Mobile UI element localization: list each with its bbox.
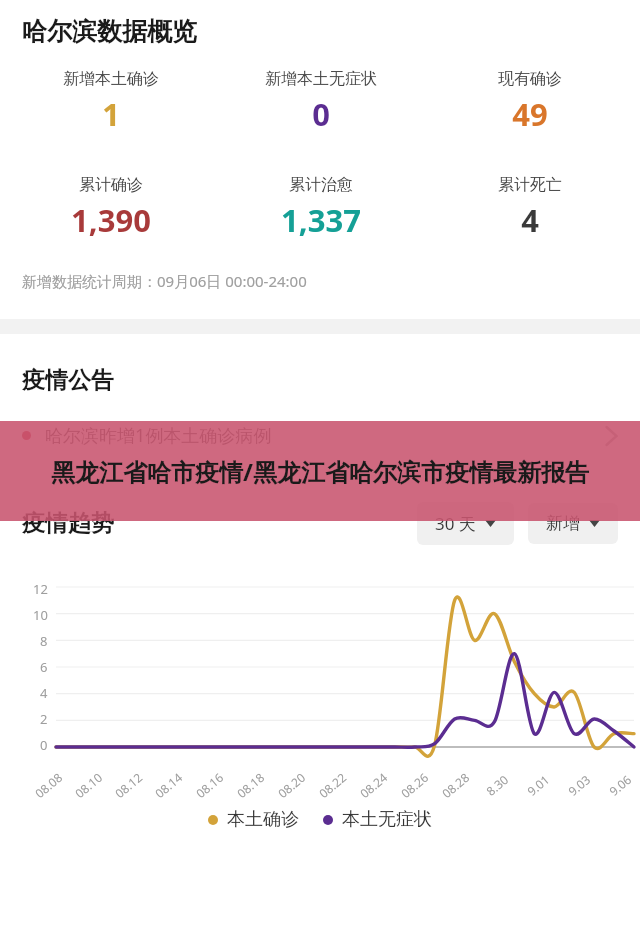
staticText: 疫情公告: [22, 366, 114, 395]
staticText: 08.18: [233, 769, 267, 801]
button[interactable]: 30 天: [417, 502, 514, 545]
staticText: 10: [33, 606, 48, 624]
staticText: 现有确诊: [498, 69, 562, 89]
other: 查看详情: [605, 425, 618, 447]
staticText: 累计死亡: [498, 175, 562, 195]
staticText: 本土无症状: [342, 808, 432, 831]
staticText: 08.10: [71, 769, 105, 801]
staticText: 新增: [546, 513, 580, 534]
staticText: 1: [102, 93, 120, 135]
staticText: 08.28: [438, 769, 472, 801]
staticText: 2: [40, 710, 48, 728]
staticText: 30 天: [435, 512, 476, 535]
button[interactable]: 新增: [528, 503, 618, 544]
staticText: 新增本土无症状: [265, 69, 377, 89]
staticText: 0: [312, 93, 330, 135]
staticText: 1,390: [71, 199, 151, 241]
staticText: 哈尔滨数据概览: [22, 16, 197, 47]
staticText: 哈尔滨昨增1例本土确诊病例: [45, 423, 605, 448]
staticText: 9.03: [565, 771, 593, 799]
staticText: 08.22: [315, 769, 349, 801]
staticText: 累计确诊: [79, 175, 143, 195]
button[interactable]: 哈尔滨昨增1例本土确诊病例: [0, 419, 640, 452]
staticText: 黑龙江省哈市疫情/黑龙江省哈尔滨市疫情最新报告: [51, 455, 589, 488]
staticText: 08.26: [397, 769, 431, 801]
staticText: 新增数据统计周期：09月06日 00:00-24:00: [22, 271, 307, 291]
staticText: 新增本土确诊: [63, 69, 159, 89]
staticText: 8.30: [483, 771, 511, 799]
staticText: 08.08: [31, 769, 65, 801]
staticText: 累计治愈: [289, 175, 353, 195]
staticText: 本土确诊: [227, 808, 299, 831]
staticText: 08.14: [151, 769, 185, 801]
staticText: 4: [40, 684, 48, 702]
staticText: 9.06: [606, 771, 634, 799]
staticText: 8: [40, 632, 48, 650]
staticText: 6: [40, 658, 48, 676]
staticText: 1,337: [281, 199, 361, 241]
staticText: 08.16: [192, 769, 226, 801]
staticText: 疫情趋势: [22, 509, 114, 538]
staticText: 12: [33, 580, 48, 598]
staticText: 08.12: [111, 769, 145, 801]
staticText: 08.24: [356, 769, 390, 801]
staticText: 0: [40, 736, 48, 754]
staticText: 9.01: [524, 771, 552, 799]
staticText: 49: [512, 93, 548, 135]
staticText: 08.20: [274, 769, 308, 801]
staticText: 4: [521, 199, 539, 241]
